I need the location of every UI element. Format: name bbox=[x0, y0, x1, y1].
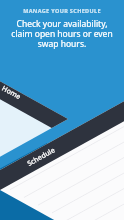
staticText: Home bbox=[0, 83, 23, 102]
staticText: Check your availability, claim open hour… bbox=[11, 18, 113, 49]
staticText: MANAGE YOUR SCHEDULE bbox=[23, 7, 101, 14]
staticText: Schedule bbox=[25, 145, 57, 169]
